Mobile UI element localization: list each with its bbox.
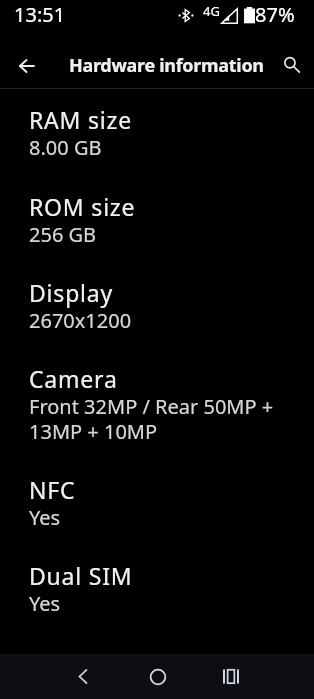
button[interactable]: Search: [270, 43, 314, 87]
button[interactable]: Back: [4, 44, 48, 88]
button[interactable]: Back: [45, 654, 120, 699]
staticText: RAM size: [29, 104, 132, 135]
staticText: Display: [29, 277, 114, 308]
staticText: Dual SIM: [29, 560, 133, 591]
staticText: Yes: [29, 590, 61, 617]
staticText: NFC: [29, 474, 76, 505]
button[interactable]: Recent apps: [195, 654, 270, 699]
button[interactable]: ROM size: [0, 183, 314, 269]
staticText: 2670x1200: [29, 307, 132, 334]
button[interactable]: NFC: [0, 466, 314, 552]
button[interactable]: Dual SIM: [0, 552, 314, 638]
staticText: 87%: [255, 1, 295, 28]
staticText: 8.00 GB: [29, 134, 102, 161]
staticText: ROM size: [29, 191, 136, 222]
button[interactable]: RAM size: [0, 96, 314, 183]
staticText: 13MP + 10MP: [29, 418, 158, 445]
staticText: Yes: [29, 504, 61, 531]
button[interactable]: Display: [0, 269, 314, 355]
staticText: 4G: [203, 2, 220, 20]
staticText: Front 32MP / Rear 50MP +: [29, 393, 274, 420]
staticText: 256 GB: [29, 221, 97, 248]
staticText: Hardware information: [69, 53, 264, 78]
staticText: Camera: [29, 363, 118, 394]
staticText: 13:51: [14, 1, 66, 28]
button[interactable]: Camera: [0, 355, 314, 466]
button[interactable]: Home: [120, 654, 195, 699]
